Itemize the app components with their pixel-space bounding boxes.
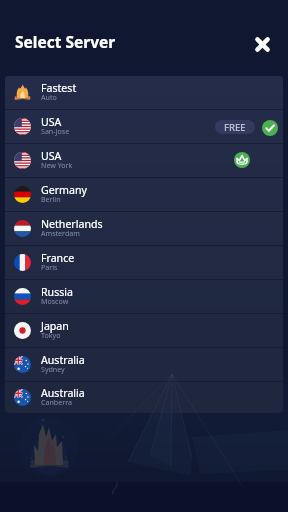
button[interactable]: Japan xyxy=(5,314,283,347)
staticText: Canberra xyxy=(41,397,72,407)
staticText: Sydney xyxy=(41,364,65,374)
staticText: Russia xyxy=(41,285,73,299)
button[interactable]: Australia xyxy=(5,382,283,413)
staticText: Japan xyxy=(41,319,69,333)
staticText: Moscow xyxy=(41,296,69,306)
button[interactable]: Close xyxy=(246,28,278,60)
staticText: France xyxy=(41,251,75,265)
staticText: FREE xyxy=(224,121,246,134)
staticText: Select Server xyxy=(15,31,116,52)
button[interactable]: Fastest xyxy=(5,76,283,109)
staticText: Berlin xyxy=(41,194,61,204)
staticText: Auto xyxy=(41,92,57,102)
button[interactable]: Russia xyxy=(5,280,283,313)
staticText: USA xyxy=(41,115,62,129)
button[interactable]: USA xyxy=(5,144,283,177)
staticText: Tokyo xyxy=(41,330,61,340)
staticText: Germany xyxy=(41,183,87,197)
button[interactable]: Australia xyxy=(5,348,283,381)
button[interactable]: France xyxy=(5,246,283,279)
staticText: Fastest xyxy=(41,81,77,95)
staticText: USA xyxy=(41,149,62,163)
staticText: Amsterdam xyxy=(41,228,80,238)
button[interactable]: Netherlands xyxy=(5,212,283,245)
staticText: Australia xyxy=(41,386,85,400)
staticText: New York xyxy=(41,160,73,170)
staticText: San-Jose xyxy=(41,126,70,136)
staticText: Paris xyxy=(41,262,58,272)
staticText: Australia xyxy=(41,353,85,367)
staticText: Netherlands xyxy=(41,217,103,231)
button[interactable]: Germany xyxy=(5,178,283,211)
button[interactable]: USA xyxy=(5,110,283,143)
